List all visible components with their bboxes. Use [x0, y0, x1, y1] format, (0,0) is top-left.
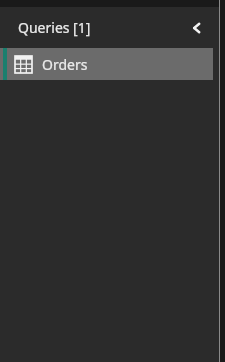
button[interactable]: Collapse pane: [183, 14, 211, 42]
staticText: Orders: [42, 55, 88, 74]
button[interactable]: Orders: [0, 48, 219, 80]
staticText: Queries [1]: [18, 18, 91, 37]
